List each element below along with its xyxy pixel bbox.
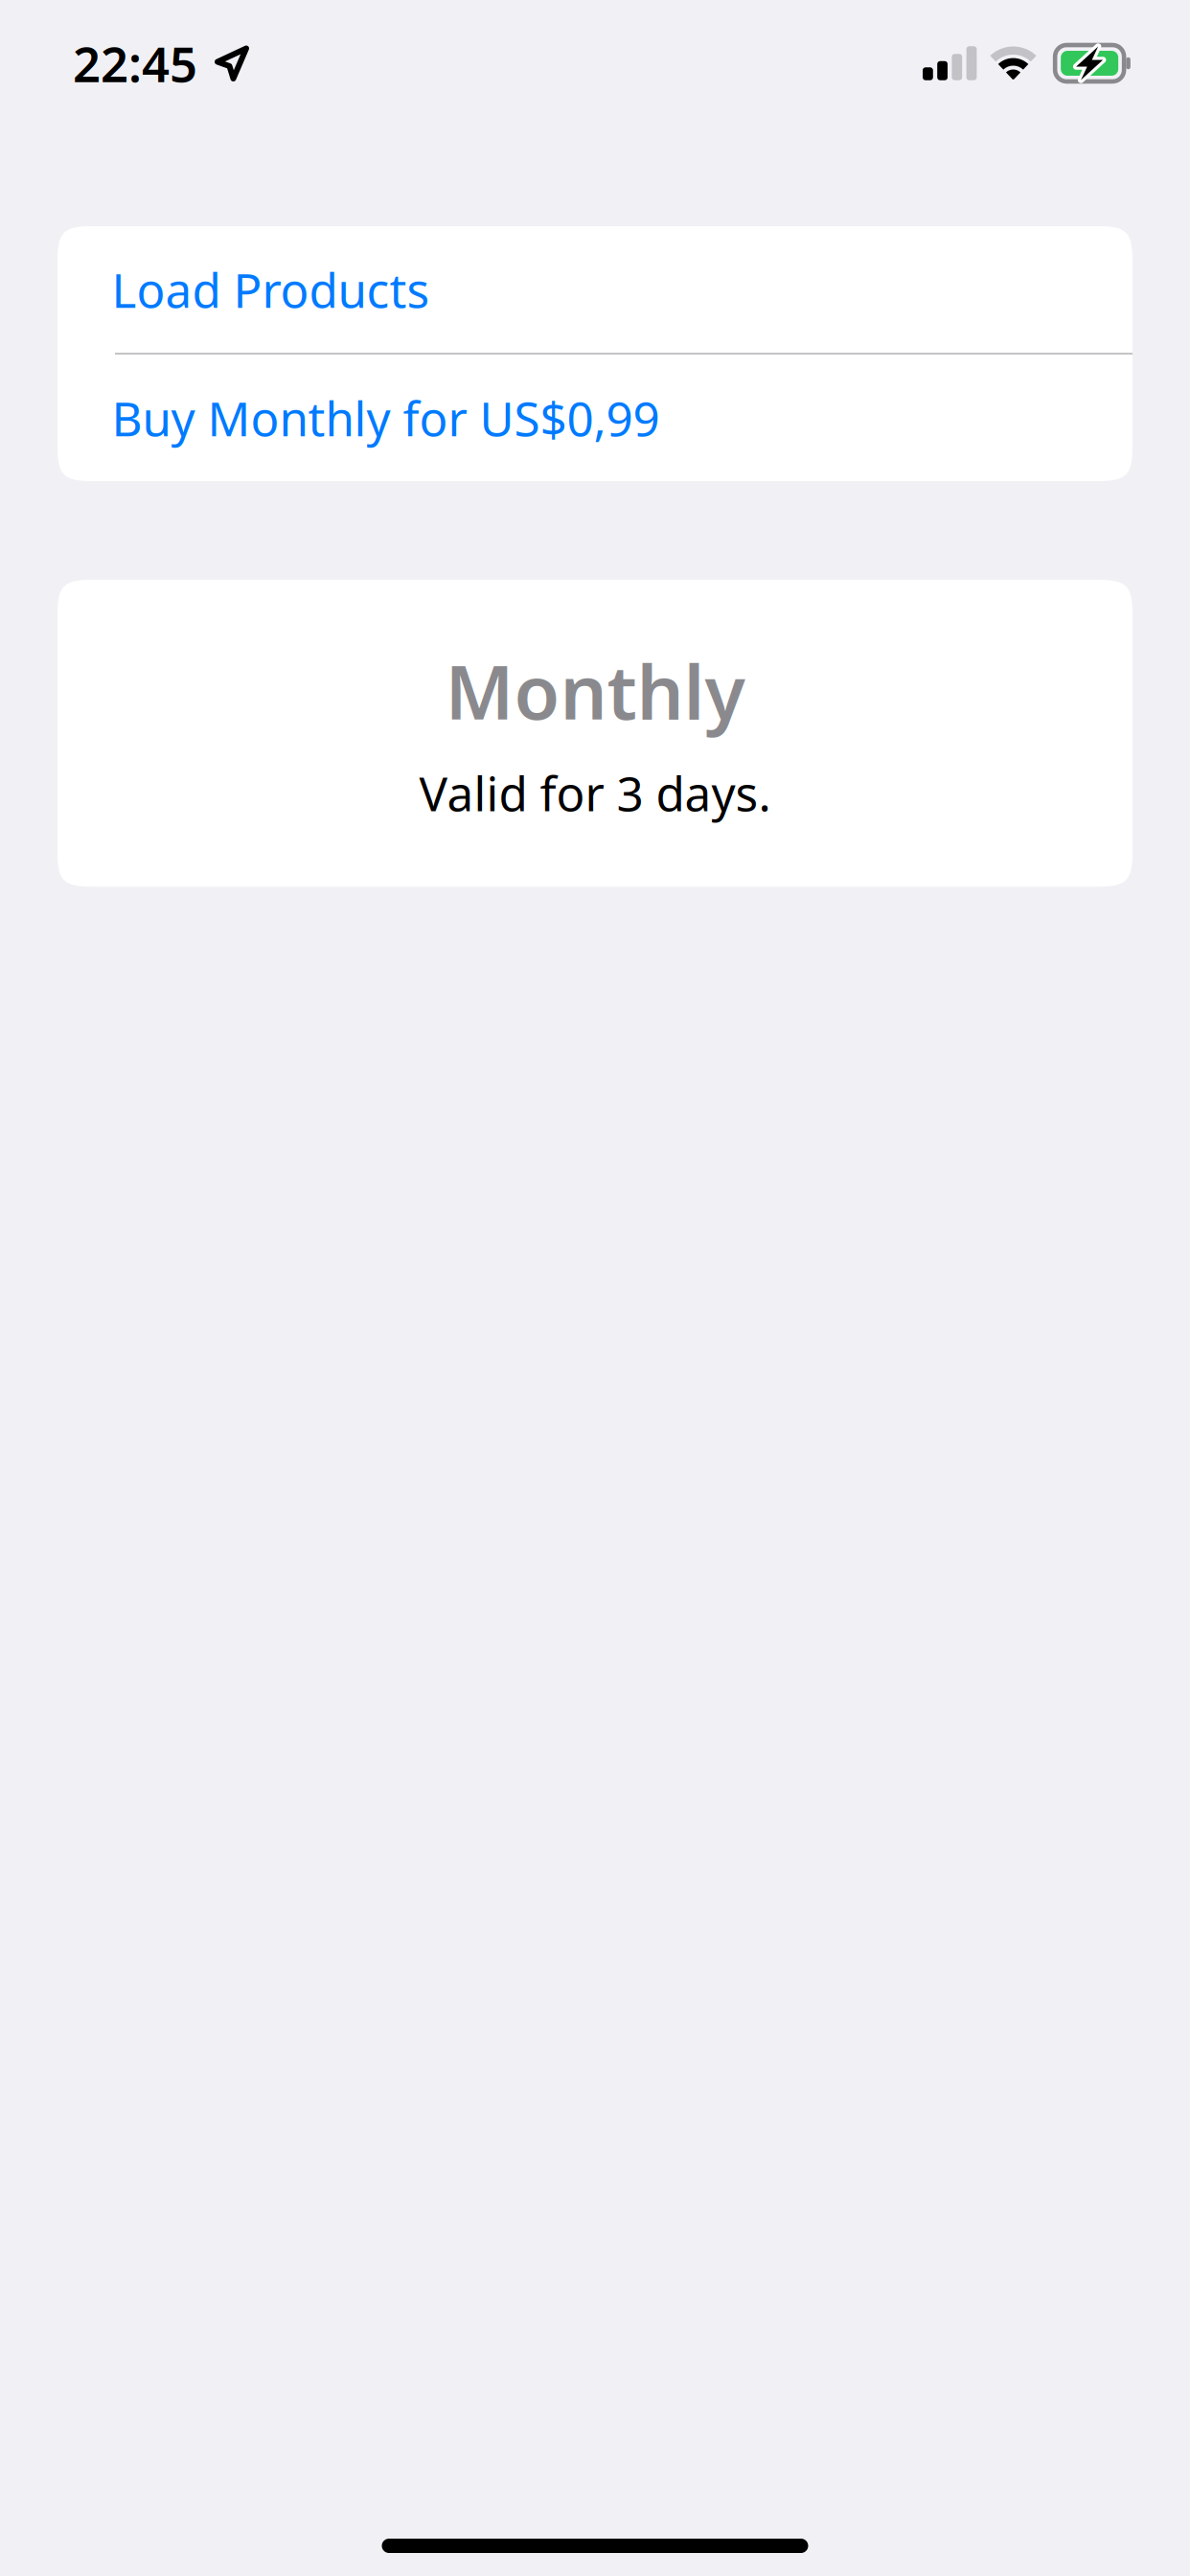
staticText: Valid for 3 days. [419,762,771,824]
staticText: Load Products [112,258,430,321]
button[interactable]: Buy Monthly for US$0,99 [57,355,1133,481]
staticText: Buy Monthly for US$0,99 [112,386,660,449]
button[interactable]: Load Products [57,226,1133,353]
staticText: Monthly [445,642,745,740]
staticText: 22:45 [73,31,197,96]
